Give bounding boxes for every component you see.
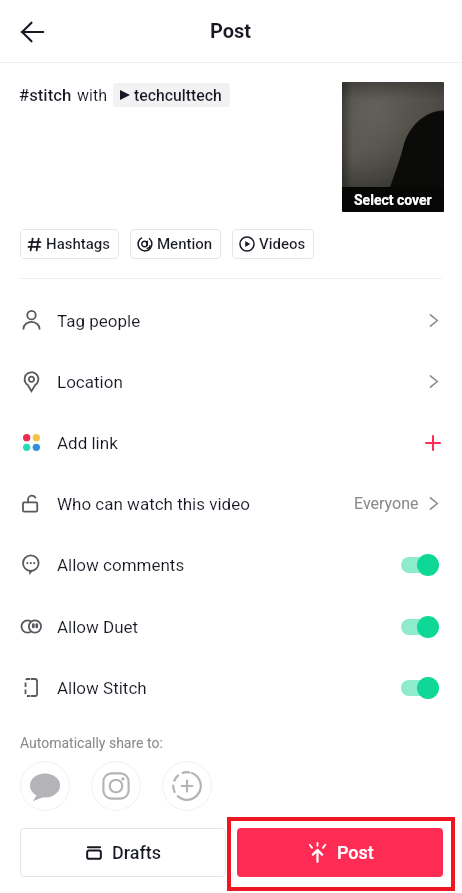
button[interactable]: Toggle [399, 553, 439, 576]
button[interactable]: Select cover [342, 82, 444, 212]
staticText: Hashtags [46, 235, 111, 253]
button[interactable]: Who can watch this video [0, 473, 462, 534]
button[interactable]: Allow Stitch [0, 657, 462, 718]
button[interactable]: Share to Instagram [91, 761, 141, 811]
button[interactable]: Hashtags [20, 229, 119, 259]
staticText: Everyone [354, 494, 419, 513]
staticText: Add link [57, 433, 423, 453]
staticText: Drafts [112, 842, 162, 863]
staticText: Who can watch this video [57, 494, 354, 514]
button[interactable]: Toggle [399, 676, 439, 699]
staticText: Videos [259, 235, 306, 253]
button[interactable]: Add link [0, 412, 462, 473]
staticText: Automatically share to: [20, 735, 163, 751]
staticText: Location [57, 372, 424, 392]
staticText: Select cover [354, 192, 432, 208]
button[interactable]: Post [237, 828, 443, 877]
staticText: Allow Stitch [57, 678, 403, 698]
staticText: #stitch [19, 85, 72, 105]
button[interactable]: Allow comments [0, 534, 462, 595]
button[interactable]: Share to chat [20, 761, 70, 811]
other: Add link [423, 433, 443, 453]
button[interactable]: Videos [232, 229, 314, 259]
button[interactable]: techculttech [113, 83, 230, 107]
button[interactable]: Allow Duet [0, 596, 462, 657]
button[interactable]: Location [0, 351, 462, 412]
button[interactable]: Tag people [0, 290, 462, 351]
button[interactable]: Drafts [20, 828, 226, 877]
button[interactable]: Mention [130, 229, 221, 259]
staticText: Tag people [57, 311, 424, 331]
staticText: Mention [157, 235, 213, 253]
button[interactable]: Back [10, 10, 54, 54]
staticText: Post [337, 842, 374, 863]
staticText: Post [210, 19, 252, 42]
staticText: Allow comments [57, 555, 403, 575]
button[interactable]: More share options [162, 761, 212, 811]
button[interactable]: Toggle [399, 615, 439, 638]
staticText: with [77, 86, 107, 105]
staticText: techculttech [134, 86, 222, 105]
staticText: Allow Duet [57, 617, 403, 637]
